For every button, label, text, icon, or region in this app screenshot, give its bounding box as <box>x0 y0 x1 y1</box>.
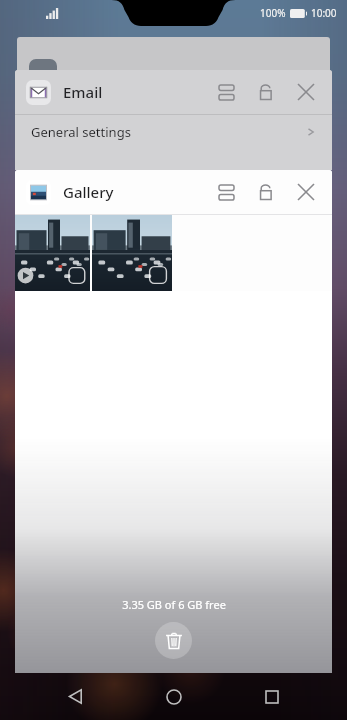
button[interactable] <box>92 215 172 291</box>
button[interactable]: Recent apps <box>248 673 296 720</box>
button[interactable]: Home <box>150 673 198 720</box>
button[interactable]: Split screen <box>206 172 246 212</box>
button[interactable]: Clear all recent apps <box>155 622 192 659</box>
staticText: Email <box>63 82 103 102</box>
staticText: 3.35 GB of 6 GB free <box>122 597 226 612</box>
button[interactable]: General settings <box>15 115 332 149</box>
button[interactable]: Lock app <box>246 172 286 212</box>
button[interactable]: Back <box>51 673 99 720</box>
button[interactable]: Lock app <box>246 72 286 112</box>
button[interactable]: Close app <box>286 72 326 112</box>
staticText: General settings <box>31 123 131 141</box>
staticText: 100% <box>260 6 286 20</box>
button[interactable] <box>17 37 330 97</box>
staticText: 10:00 <box>311 6 337 20</box>
button[interactable]: Close app <box>286 172 326 212</box>
button[interactable]: Split screen <box>206 72 246 112</box>
staticText: Gallery <box>63 182 114 202</box>
button[interactable] <box>15 215 90 291</box>
